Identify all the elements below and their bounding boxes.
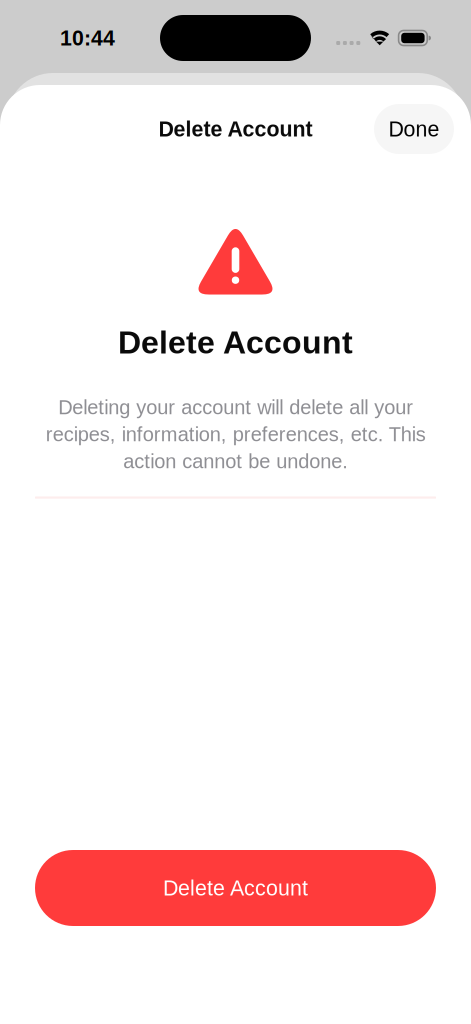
staticText: 10:44 [60, 26, 115, 50]
staticText: Done [388, 117, 439, 141]
staticText: Delete Account [118, 324, 353, 360]
button[interactable]: Done [374, 104, 454, 154]
button[interactable]: Delete Account [35, 850, 436, 926]
staticText: Deleting your account will delete all yo… [45, 396, 425, 472]
staticText: Delete Account [158, 117, 312, 141]
staticText: Delete Account [163, 876, 308, 900]
